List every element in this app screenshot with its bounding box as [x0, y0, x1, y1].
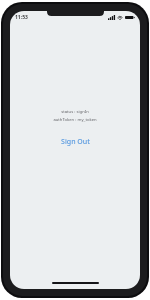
staticText: status : signIn	[61, 109, 89, 115]
staticText: 11:53	[15, 14, 28, 21]
button[interactable]: Sign Out	[52, 134, 99, 150]
other: Wi-Fi	[117, 15, 123, 20]
staticText: Sign Out	[61, 137, 90, 147]
other: Cellular signal	[108, 15, 115, 20]
staticText: authToken : my_token	[53, 117, 97, 123]
other: Battery	[125, 15, 135, 20]
